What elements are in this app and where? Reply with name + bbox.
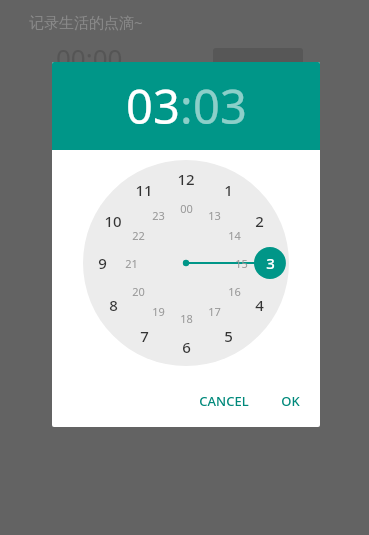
staticText: 2 xyxy=(255,211,264,231)
button[interactable]: 03 xyxy=(193,74,247,138)
staticText: OK xyxy=(281,392,300,410)
staticText: 19 xyxy=(152,304,165,319)
staticText: 4 xyxy=(255,295,264,315)
staticText: 16 xyxy=(228,284,241,299)
button[interactable]: CANCEL xyxy=(187,384,261,418)
staticText: CANCEL xyxy=(199,392,249,410)
staticText: 6 xyxy=(182,337,191,357)
staticText: 12 xyxy=(177,169,195,189)
staticText: 7 xyxy=(140,326,149,346)
staticText: 10 xyxy=(104,211,122,231)
button[interactable]: 03 xyxy=(126,74,180,138)
staticText: 13 xyxy=(208,208,221,223)
button[interactable]: OK xyxy=(269,384,312,418)
staticText: 15 xyxy=(235,256,248,271)
staticText: 1 xyxy=(224,180,233,200)
staticText: 00:00 xyxy=(56,40,123,75)
staticText: 5 xyxy=(224,326,233,346)
button[interactable]: Clock face, 24 hour xyxy=(83,160,289,366)
staticText: 21 xyxy=(125,256,138,271)
staticText: 3 xyxy=(266,253,275,273)
button[interactable] xyxy=(213,48,303,74)
staticText: 20 xyxy=(132,284,145,299)
staticText: 17 xyxy=(208,304,221,319)
staticText: 14 xyxy=(228,228,241,243)
staticText: 18 xyxy=(180,311,193,326)
staticText: 22 xyxy=(132,228,145,243)
staticText: 8 xyxy=(109,295,118,315)
staticText: 记录生活的点滴~ xyxy=(29,12,143,32)
staticText: 9 xyxy=(98,253,107,273)
staticText: 11 xyxy=(135,180,153,200)
staticText: 23 xyxy=(152,208,165,223)
staticText: : xyxy=(180,74,193,138)
staticText: 00 xyxy=(180,201,193,216)
